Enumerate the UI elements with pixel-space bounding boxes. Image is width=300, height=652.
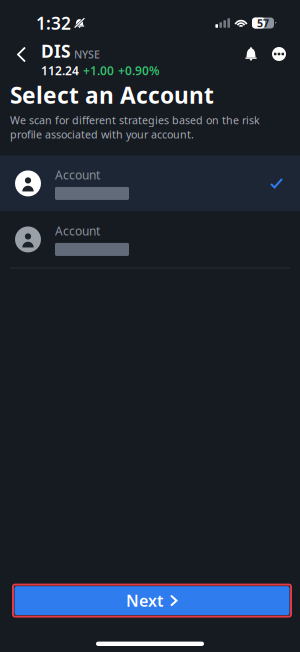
staticText: DIS [41,39,71,62]
staticText: Next [126,590,163,611]
staticText: Account [55,167,100,183]
staticText: +0.90% [118,62,160,78]
staticText: Account [55,223,100,239]
staticText: Select an Account [10,80,214,110]
button[interactable]: Account [0,211,300,267]
staticText: We scan for different strategies based o… [10,113,260,141]
staticText: NYSE [74,47,100,62]
button[interactable]: More options [269,44,289,64]
staticText: 1:32 [36,11,71,34]
staticText: +1.00 [83,62,114,78]
button[interactable]: Notifications [241,44,261,64]
button[interactable]: Next [13,585,291,617]
staticText: 57 [257,16,269,30]
button[interactable]: Back [9,44,35,64]
staticText: 112.24 [41,62,79,78]
button[interactable]: Account [0,155,300,211]
